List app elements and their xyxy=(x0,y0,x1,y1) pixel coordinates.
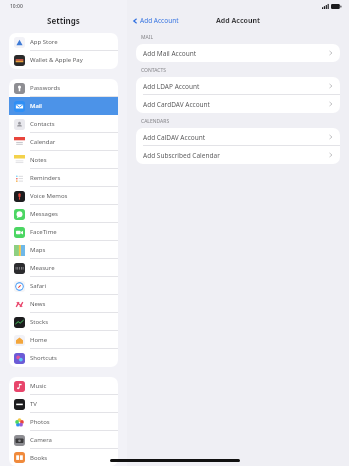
staticText: Messages xyxy=(30,210,58,218)
button[interactable]: Mail xyxy=(9,97,118,115)
staticText: Add Mail Account xyxy=(143,49,197,58)
staticText: Add LDAP Account xyxy=(143,82,200,91)
staticText: MAIL xyxy=(141,34,154,41)
staticText: Add Account xyxy=(216,16,261,26)
staticText: Shortcuts xyxy=(30,354,57,362)
staticText: Contacts xyxy=(30,120,55,128)
button[interactable]: Reminders xyxy=(9,169,118,187)
button[interactable]: Contacts xyxy=(9,115,118,133)
staticText: Passwords xyxy=(30,84,61,92)
button[interactable]: TV xyxy=(9,395,118,413)
staticText: 10:00 xyxy=(10,3,23,10)
staticText: Books xyxy=(30,454,48,462)
button[interactable]: Safari xyxy=(9,277,118,295)
staticText: Add CalDAV Account xyxy=(143,133,206,142)
staticText: Music xyxy=(30,382,47,390)
staticText: Add CardDAV Account xyxy=(143,100,210,109)
staticText: Maps xyxy=(30,246,46,254)
button[interactable]: Photos xyxy=(9,413,118,431)
staticText: News xyxy=(30,300,46,308)
staticText: Calendar xyxy=(30,138,56,146)
staticText: Photos xyxy=(30,418,50,426)
button[interactable]: Messages xyxy=(9,205,118,223)
button[interactable]: Add Account xyxy=(132,16,179,25)
button[interactable]: News xyxy=(9,295,118,313)
button[interactable]: Music xyxy=(9,377,118,395)
staticText: Home xyxy=(30,336,48,344)
button[interactable]: Add Mail Account xyxy=(136,44,340,62)
button[interactable]: Add CardDAV Account xyxy=(136,95,340,113)
button[interactable]: Measure xyxy=(9,259,118,277)
button[interactable]: Calendar xyxy=(9,133,118,151)
button[interactable]: FaceTime xyxy=(9,223,118,241)
button[interactable]: Shortcuts xyxy=(9,349,118,367)
button[interactable]: Notes xyxy=(9,151,118,169)
button[interactable]: Camera xyxy=(9,431,118,449)
staticText: Wallet & Apple Pay xyxy=(30,56,83,64)
staticText: Reminders xyxy=(30,174,61,182)
staticText: App Store xyxy=(30,38,58,46)
button[interactable]: Add LDAP Account xyxy=(136,77,340,95)
button[interactable]: Home xyxy=(9,331,118,349)
button[interactable]: Books xyxy=(9,449,118,466)
staticText: Voice Memos xyxy=(30,192,68,200)
staticText: Measure xyxy=(30,264,55,272)
button[interactable]: Maps xyxy=(9,241,118,259)
staticText: CONTACTS xyxy=(141,67,166,74)
staticText: Notes xyxy=(30,156,47,164)
button[interactable]: Add CalDAV Account xyxy=(136,128,340,146)
button[interactable]: Passwords xyxy=(9,79,118,97)
staticText: CALENDARS xyxy=(141,118,170,125)
button[interactable]: Wallet & Apple Pay xyxy=(9,51,118,69)
staticText: Mail xyxy=(30,102,42,110)
staticText: Stocks xyxy=(30,318,49,326)
button[interactable]: Stocks xyxy=(9,313,118,331)
staticText: Add Account xyxy=(140,16,179,25)
staticText: Add Subscribed Calendar xyxy=(143,151,220,160)
staticText: TV xyxy=(30,400,37,408)
button[interactable]: Voice Memos xyxy=(9,187,118,205)
button[interactable]: Add Subscribed Calendar xyxy=(136,146,340,164)
button[interactable]: App Store xyxy=(9,33,118,51)
staticText: Camera xyxy=(30,436,52,444)
staticText: Settings xyxy=(47,15,80,26)
staticText: FaceTime xyxy=(30,228,57,236)
staticText: Safari xyxy=(30,282,47,290)
